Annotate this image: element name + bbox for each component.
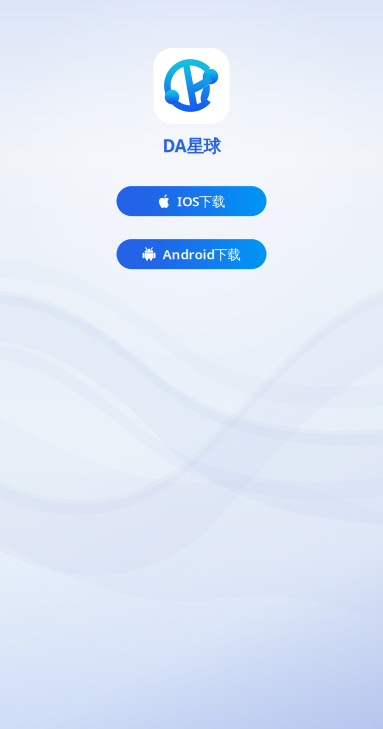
button[interactable]: Android下载 bbox=[116, 239, 266, 269]
staticText: IOS下载 bbox=[177, 192, 225, 210]
button[interactable]: IOS下载 bbox=[116, 186, 266, 216]
staticText: DA星球 bbox=[162, 134, 220, 157]
staticText: Android下载 bbox=[162, 245, 240, 263]
